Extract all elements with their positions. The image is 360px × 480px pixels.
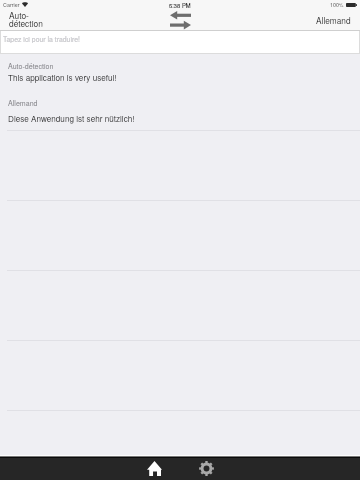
staticText: Auto- détection: [9, 9, 43, 30]
staticText: 100%: [330, 1, 344, 9]
button[interactable]: Allemand: [250, 9, 360, 30]
staticText: Carrier: [3, 1, 20, 9]
staticText: Auto-détection: [8, 61, 54, 71]
button[interactable]: [0, 411, 360, 480]
button[interactable]: Swap languages: [162, 9, 198, 30]
button[interactable]: Tapez ici pour la traduire!: [1, 31, 359, 53]
staticText: Tapez ici pour la traduire!: [3, 34, 80, 44]
staticText: Diese Anwendung ist sehr nützlich!: [8, 113, 135, 125]
button[interactable]: Auto- détection: [0, 9, 110, 30]
button[interactable]: Settings: [188, 458, 224, 480]
staticText: This application is very useful!: [8, 72, 117, 84]
staticText: Allemand: [316, 14, 351, 26]
staticText: 5:38 PM: [169, 1, 191, 9]
button[interactable]: Auto-détection: [0, 54, 360, 130]
staticText: Allemand: [8, 98, 38, 108]
button[interactable]: Home: [136, 458, 172, 480]
